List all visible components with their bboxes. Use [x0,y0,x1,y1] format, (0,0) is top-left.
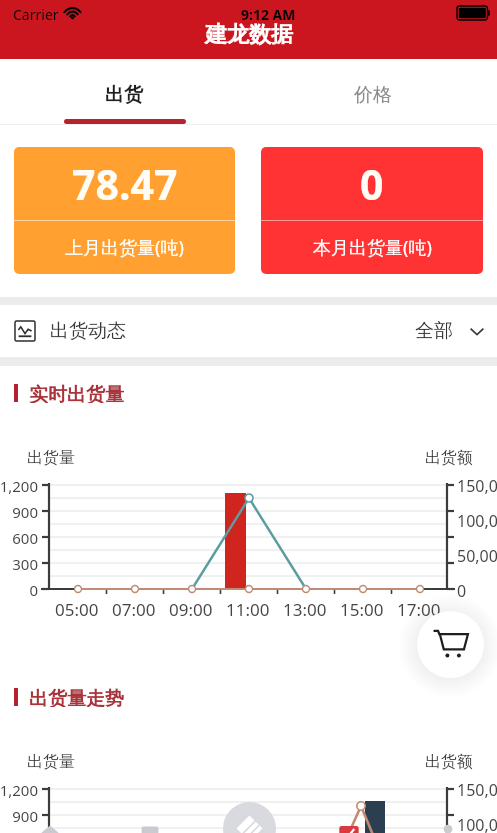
staticText: 9:12 AM [241,5,296,21]
staticText: 150,000 [457,779,497,801]
staticText: 100,000 [457,510,497,532]
staticText: 实时出货量 [29,383,124,403]
staticText: 900 [12,502,38,522]
staticText: 出货额 [425,448,473,468]
button[interactable]: 发布 [200,818,299,833]
staticText: 1,200 [0,780,38,800]
staticText: 0 [29,580,38,600]
staticText: Carrier [13,5,59,21]
staticText: 建龙数据 [205,21,293,49]
button[interactable]: 0 [261,147,483,274]
button[interactable]: 发布 [223,802,276,833]
staticText: 05:00 [55,598,99,621]
staticText: 11:00 [226,598,270,621]
staticText: 出货量 [27,448,75,468]
staticText: 600 [12,528,38,548]
staticText: 50,000 [457,545,497,567]
button[interactable]: 我的 [398,818,497,833]
button[interactable]: 资讯 [100,818,200,833]
staticText: 17:00 [397,598,441,621]
staticText: 0 [360,156,384,212]
staticText: 78.47 [72,156,178,212]
button[interactable]: 价格 [248,59,497,125]
staticText: 900 [12,806,38,826]
staticText: 全部 [415,319,453,343]
staticText: 出货动态 [50,319,126,343]
staticText: 100,000 [457,814,497,833]
button[interactable]: 78.47 [14,147,235,274]
staticText: 15:00 [340,598,384,621]
staticText: 出货量 [27,752,75,772]
staticText: 300 [12,554,38,574]
button[interactable]: 出货 [0,59,248,125]
staticText: 价格 [354,83,392,107]
staticText: 150,000 [457,475,497,497]
button[interactable]: 首页 [0,818,100,833]
staticText: 0 [457,580,467,602]
staticText: 本月出货量(吨) [313,235,432,260]
staticText: 07:00 [112,598,156,621]
button[interactable]: 出货动态 [0,305,497,357]
staticText: 出货额 [425,752,473,772]
button[interactable]: 订单 [299,818,398,833]
staticText: 上月出货量(吨) [65,235,184,260]
staticText: 出货量走势 [29,687,124,707]
staticText: 出货 [105,83,143,107]
staticText: 13:00 [283,598,327,621]
button[interactable]: 购物车 [417,611,484,678]
staticText: 09:00 [169,598,213,621]
staticText: 1,200 [0,476,38,496]
